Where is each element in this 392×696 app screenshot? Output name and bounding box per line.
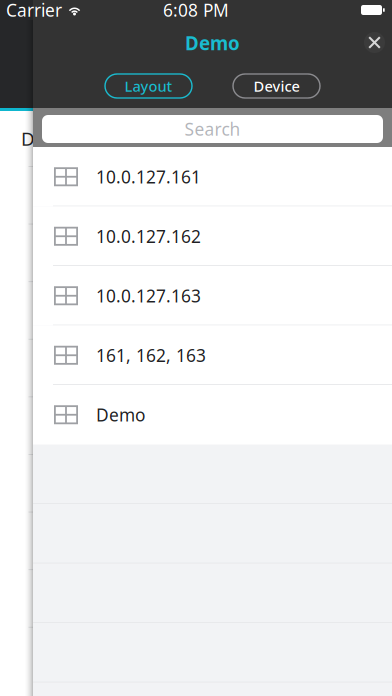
staticText: Demo [185,31,240,55]
button[interactable]: Close [364,32,385,53]
staticText: Demo [96,403,145,426]
staticText: 10.0.127.162 [96,225,201,248]
button[interactable]: 161, 162, 163 [33,325,392,385]
staticText: Device [253,76,299,96]
button[interactable]: Demo [33,385,392,444]
button[interactable]: Device [233,74,320,98]
staticText: 6:08 PM [163,0,229,21]
button[interactable]: 10.0.127.163 [33,266,392,325]
staticText: Carrier [6,0,62,21]
staticText: 10.0.127.163 [96,284,201,307]
staticText: Layout [124,76,172,96]
staticText: Search [184,117,240,140]
staticText: Device [21,126,79,151]
button[interactable]: 10.0.127.161 [33,147,392,206]
staticText: 161, 162, 163 [96,344,206,367]
button[interactable]: Layout [105,74,192,98]
staticText: 10.0.127.161 [96,165,201,188]
button[interactable]: 10.0.127.162 [33,206,392,266]
